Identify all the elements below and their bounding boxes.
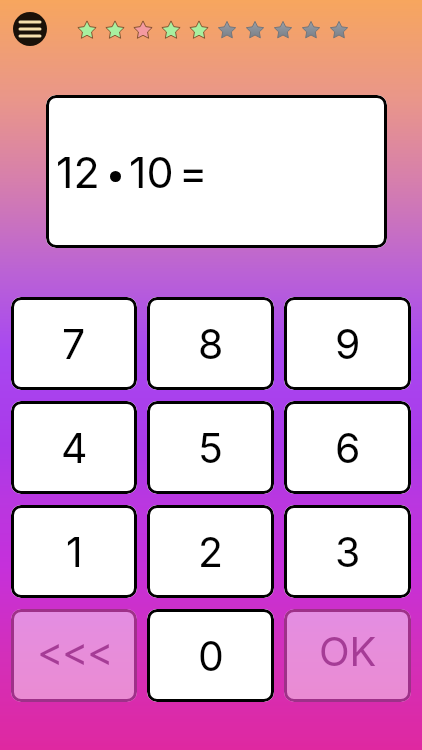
button[interactable]: 2	[147, 505, 274, 598]
button[interactable]: <<<	[11, 609, 137, 702]
staticText: 7	[62, 319, 86, 369]
button[interactable]: 9	[284, 297, 411, 390]
button[interactable]: OK	[284, 609, 411, 702]
button[interactable]: 5	[147, 401, 274, 494]
staticText: OK	[319, 627, 377, 675]
button[interactable]: 4	[11, 401, 137, 494]
button[interactable]: 3	[284, 505, 411, 598]
button[interactable]: 0	[147, 609, 274, 702]
staticText: 9	[335, 319, 361, 369]
button[interactable]: 8	[147, 297, 274, 390]
staticText: 8	[198, 319, 224, 369]
button[interactable]	[13, 12, 47, 46]
staticText: <<<	[37, 627, 112, 675]
staticText: 1	[66, 527, 83, 577]
staticText: 10	[129, 146, 174, 198]
staticText: 2	[198, 527, 224, 577]
staticText: 6	[335, 423, 361, 473]
staticText: =	[179, 146, 208, 198]
button[interactable]: 7	[11, 297, 137, 390]
button[interactable]: 6	[284, 401, 411, 494]
staticText: 4	[61, 423, 88, 473]
staticText: 0	[198, 631, 224, 681]
staticText: 12	[56, 146, 100, 198]
button[interactable]: 1	[11, 505, 137, 598]
staticText: 5	[198, 423, 223, 473]
staticText: 3	[335, 527, 361, 577]
